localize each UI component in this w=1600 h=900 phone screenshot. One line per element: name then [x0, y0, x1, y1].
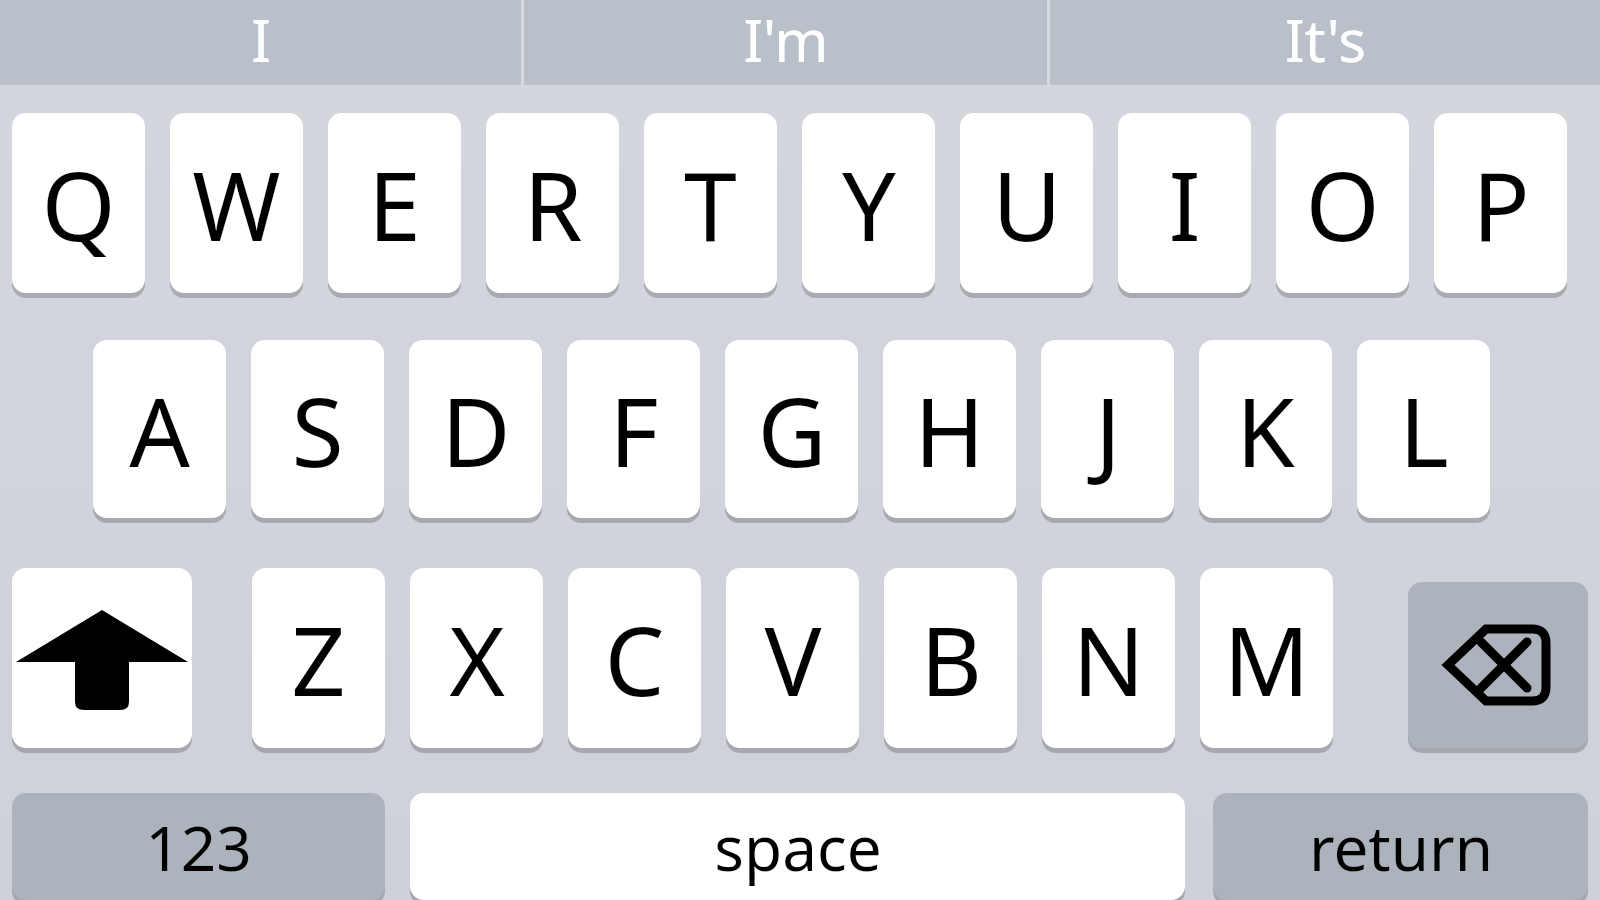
- button[interactable]: T: [644, 113, 777, 293]
- staticText: A: [129, 365, 190, 494]
- staticText: U: [992, 139, 1062, 268]
- button[interactable]: M: [1200, 568, 1333, 748]
- staticText: R: [523, 139, 583, 268]
- button[interactable]: return: [1213, 793, 1588, 900]
- button[interactable]: K: [1199, 340, 1332, 518]
- button[interactable]: Q: [12, 113, 145, 293]
- staticText: V: [764, 594, 822, 723]
- button[interactable]: D: [409, 340, 542, 518]
- button[interactable]: Backspace: [1408, 582, 1588, 748]
- button[interactable]: F: [567, 340, 700, 518]
- button[interactable]: B: [884, 568, 1017, 748]
- staticText: E: [368, 139, 421, 268]
- button[interactable]: 123: [12, 793, 385, 900]
- staticText: K: [1236, 365, 1295, 494]
- button[interactable]: Y: [802, 113, 935, 293]
- staticText: S: [291, 365, 344, 494]
- staticText: H: [914, 365, 985, 494]
- staticText: O: [1305, 139, 1380, 268]
- button[interactable]: It's: [1050, 0, 1600, 85]
- button[interactable]: E: [328, 113, 461, 293]
- staticText: Y: [842, 139, 896, 268]
- staticText: space: [714, 805, 882, 889]
- button[interactable]: J: [1041, 340, 1174, 518]
- button[interactable]: Shift: [12, 568, 192, 748]
- staticText: P: [1472, 139, 1530, 268]
- staticText: T: [684, 139, 737, 268]
- staticText: C: [604, 594, 665, 723]
- button[interactable]: U: [960, 113, 1093, 293]
- staticText: M: [1223, 594, 1310, 723]
- button[interactable]: A: [93, 340, 226, 518]
- button[interactable]: I: [0, 0, 522, 85]
- button[interactable]: H: [883, 340, 1016, 518]
- staticText: W: [192, 139, 281, 268]
- button[interactable]: I: [1118, 113, 1251, 293]
- button[interactable]: W: [170, 113, 303, 293]
- button[interactable]: L: [1357, 340, 1490, 518]
- button[interactable]: C: [568, 568, 701, 748]
- button[interactable]: X: [410, 568, 543, 748]
- button[interactable]: O: [1276, 113, 1409, 293]
- staticText: L: [1399, 365, 1449, 494]
- staticText: 123: [145, 805, 252, 889]
- button[interactable]: P: [1434, 113, 1567, 293]
- button[interactable]: G: [725, 340, 858, 518]
- button[interactable]: S: [251, 340, 384, 518]
- staticText: I: [251, 0, 271, 79]
- staticText: Q: [41, 139, 116, 268]
- button[interactable]: I'm: [524, 0, 1048, 85]
- staticText: It's: [1285, 0, 1366, 79]
- staticText: G: [757, 365, 827, 494]
- staticText: I'm: [743, 0, 829, 79]
- staticText: D: [441, 365, 511, 494]
- staticText: I: [1168, 139, 1201, 268]
- button[interactable]: space: [410, 793, 1185, 900]
- staticText: return: [1309, 805, 1493, 889]
- button[interactable]: Z: [252, 568, 385, 748]
- button[interactable]: V: [726, 568, 859, 748]
- staticText: X: [449, 594, 505, 723]
- staticText: F: [609, 365, 659, 494]
- staticText: B: [920, 594, 982, 723]
- button[interactable]: R: [486, 113, 619, 293]
- button[interactable]: N: [1042, 568, 1175, 748]
- staticText: J: [1095, 365, 1121, 494]
- staticText: N: [1072, 594, 1145, 723]
- staticText: Z: [291, 594, 346, 723]
